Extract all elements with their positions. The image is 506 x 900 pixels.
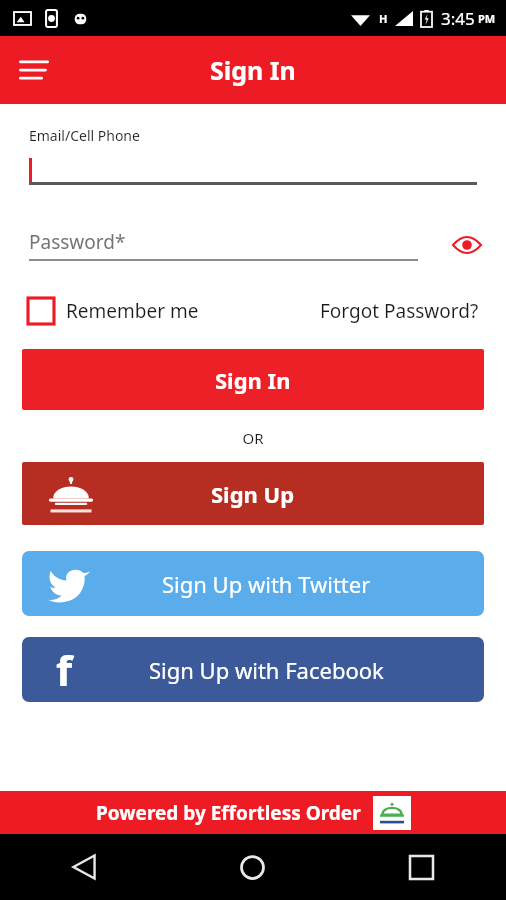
button[interactable]: Back bbox=[0, 834, 168, 900]
staticText: Sign Up with Facebook bbox=[149, 655, 384, 685]
staticText: H bbox=[379, 11, 388, 26]
staticText: PM bbox=[478, 11, 496, 26]
button[interactable]: Remember me bbox=[28, 298, 199, 324]
button[interactable]: Sign Up bbox=[22, 462, 484, 525]
staticText: f bbox=[56, 641, 73, 698]
staticText: Email/Cell Phone bbox=[29, 126, 140, 145]
button[interactable]: Powered by Effortless Order bbox=[0, 791, 506, 834]
staticText: Remember me bbox=[66, 298, 199, 324]
button[interactable]: Home bbox=[168, 834, 337, 900]
button[interactable]: Sign Up with Twitter bbox=[22, 551, 484, 616]
button[interactable]: Password* bbox=[29, 229, 447, 261]
button[interactable] bbox=[29, 156, 477, 182]
button[interactable]: Forgot Password? bbox=[320, 298, 479, 324]
staticText: Sign In bbox=[215, 365, 291, 395]
button[interactable]: Open navigation menu bbox=[8, 44, 60, 96]
staticText: Sign In bbox=[210, 53, 296, 87]
button[interactable]: f bbox=[22, 637, 484, 702]
staticText: Sign Up bbox=[211, 479, 295, 509]
staticText: Forgot Password? bbox=[320, 298, 479, 324]
button[interactable]: Recent apps bbox=[337, 834, 506, 900]
staticText: 3:45 bbox=[441, 7, 475, 30]
staticText: Powered by Effortless Order bbox=[96, 800, 361, 826]
button[interactable]: Sign In bbox=[22, 349, 484, 410]
staticText: Sign Up with Twitter bbox=[162, 569, 371, 599]
staticText: OR bbox=[0, 428, 506, 448]
staticText: Password* bbox=[29, 229, 126, 255]
button[interactable]: Show password bbox=[447, 225, 487, 265]
